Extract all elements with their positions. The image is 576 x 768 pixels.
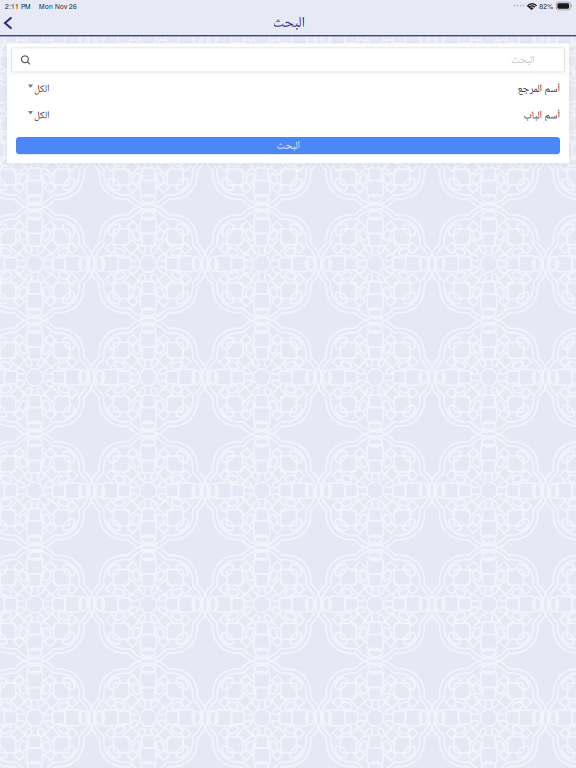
button[interactable]: البحث bbox=[16, 137, 560, 154]
staticText: 82% bbox=[539, 1, 553, 11]
staticText: Mon Nov 26 bbox=[39, 1, 77, 11]
button[interactable]: الكل bbox=[7, 75, 569, 102]
staticText: الكل bbox=[33, 82, 48, 95]
staticText: البحث bbox=[510, 53, 534, 67]
staticText: البحث bbox=[276, 138, 300, 153]
staticText: أسم المرجع bbox=[517, 81, 560, 96]
staticText: الكل bbox=[33, 108, 48, 122]
button[interactable]: Back bbox=[0, 13, 20, 33]
staticText: أسم الباب bbox=[523, 108, 560, 122]
button[interactable]: الكل bbox=[7, 102, 569, 128]
staticText: البحث bbox=[272, 13, 304, 33]
staticText: 2:11 PM bbox=[5, 1, 31, 11]
